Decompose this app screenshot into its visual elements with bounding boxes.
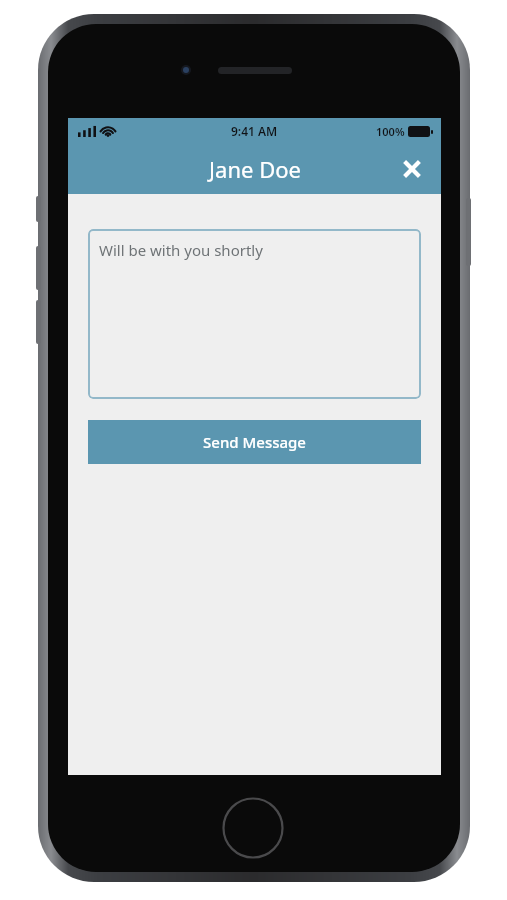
button[interactable]: Will be with you shortly (88, 229, 421, 399)
button[interactable]: Send Message (88, 420, 421, 464)
staticText: 100% (376, 124, 405, 139)
staticText: Send Message (203, 432, 306, 452)
staticText: 9:41 AM (231, 123, 278, 139)
staticText: Will be with you shortly (99, 240, 263, 260)
button[interactable]: Close (395, 152, 429, 186)
staticText: Jane Doe (209, 154, 301, 184)
